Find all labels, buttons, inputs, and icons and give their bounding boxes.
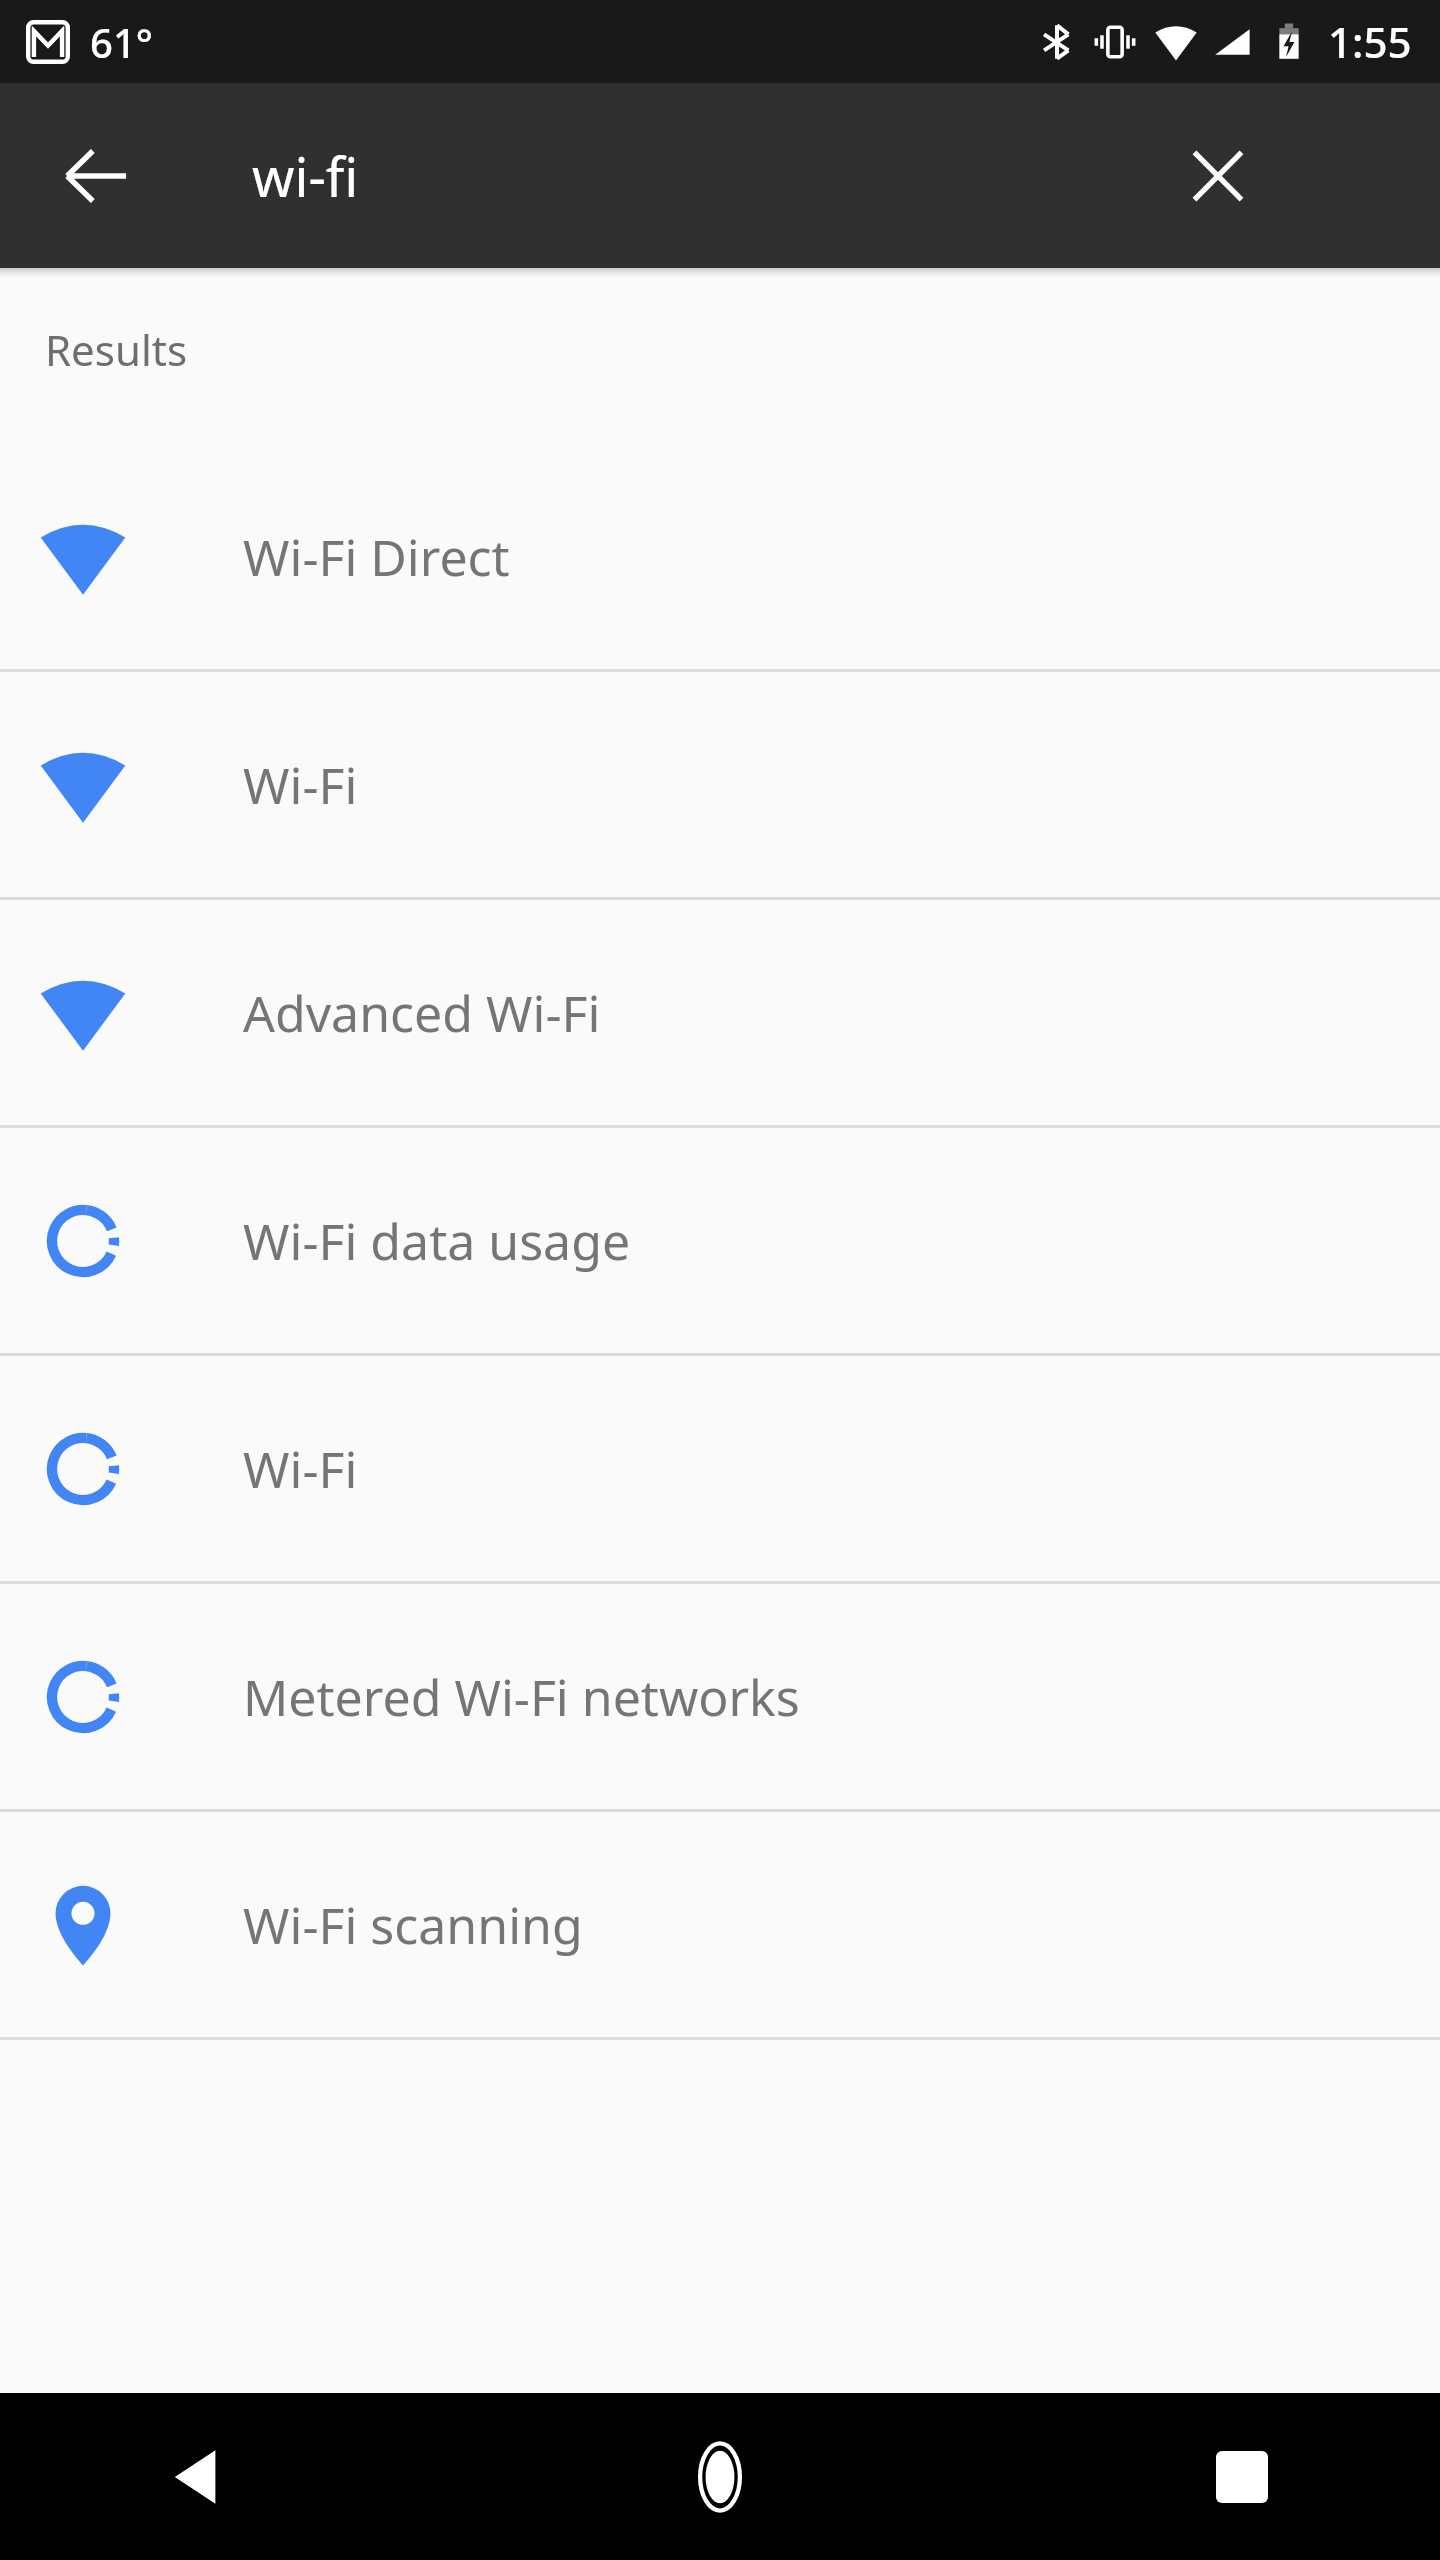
button[interactable]: Back bbox=[36, 116, 156, 236]
button[interactable]: Home bbox=[480, 2393, 960, 2560]
button[interactable]: Wi-Fi Direct bbox=[0, 444, 1440, 669]
staticText: Wi-Fi bbox=[243, 751, 358, 819]
staticText: 61° bbox=[90, 15, 153, 69]
button[interactable]: Metered Wi-Fi networks bbox=[0, 1584, 1440, 1809]
staticText: Wi-Fi bbox=[243, 1435, 358, 1503]
button[interactable]: Back bbox=[0, 2393, 480, 2560]
staticText: Results bbox=[45, 321, 188, 378]
button[interactable]: Advanced Wi-Fi bbox=[0, 900, 1440, 1125]
staticText: Wi-Fi data usage bbox=[243, 1207, 631, 1275]
button[interactable]: Wi-Fi bbox=[0, 1356, 1440, 1581]
staticText: wi-fi bbox=[252, 139, 359, 213]
button[interactable]: Clear search bbox=[1158, 116, 1278, 236]
staticText: 1:55 bbox=[1328, 13, 1412, 70]
button[interactable]: Recent apps bbox=[960, 2393, 1440, 2560]
staticText: Advanced Wi-Fi bbox=[243, 979, 601, 1047]
staticText: Wi-Fi scanning bbox=[243, 1891, 583, 1959]
staticText: Wi-Fi Direct bbox=[243, 523, 510, 591]
button[interactable]: Wi-Fi data usage bbox=[0, 1128, 1440, 1353]
staticText: Metered Wi-Fi networks bbox=[243, 1663, 800, 1731]
button[interactable]: Wi-Fi scanning bbox=[0, 1812, 1440, 2037]
button[interactable]: Wi-Fi bbox=[0, 672, 1440, 897]
